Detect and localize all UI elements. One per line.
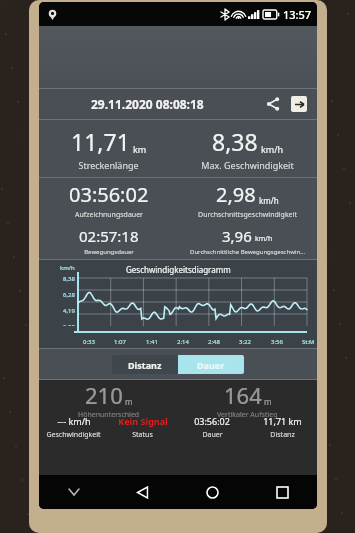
button[interactable]: Teilen — [261, 92, 285, 116]
staticText: Vertikaler Aufstieg — [217, 410, 278, 420]
staticText: m — [264, 396, 272, 407]
staticText: 02:57:18 — [79, 226, 139, 246]
staticText: 1:41 — [146, 338, 158, 346]
staticText: 11,71 — [71, 126, 130, 157]
staticText: Kein Signal — [118, 415, 168, 427]
staticText: 8,38 — [212, 126, 258, 157]
button[interactable]: Kein Signal — [108, 380, 177, 475]
staticText: km/h — [259, 195, 279, 206]
staticText: km/h — [261, 143, 284, 155]
button[interactable]: 3,96 — [178, 223, 317, 259]
button[interactable]: 11,71 — [39, 120, 178, 177]
staticText: Distanz — [128, 359, 162, 371]
button[interactable]: 03:56:02 — [177, 380, 247, 475]
button[interactable]: --- km/h — [39, 380, 108, 475]
staticText: Dauer — [202, 430, 223, 440]
staticText: Streckenlänge — [78, 159, 139, 171]
staticText: 03:56:02 — [69, 181, 149, 208]
staticText: Geschwindigkeitsdiagramm — [126, 264, 231, 275]
staticText: Durchschnittsgeschwindigkeit — [198, 210, 297, 220]
button[interactable]: Ausblenden — [39, 475, 108, 509]
staticText: Aufzeichnungsdauer — [75, 210, 143, 220]
staticText: 0:33 — [83, 338, 95, 346]
staticText: Durchschnittliche Bewegungsgeschwin... — [190, 248, 305, 256]
staticText: Dauer — [197, 359, 225, 371]
staticText: km/h — [255, 234, 273, 244]
button[interactable]: 02:57:18 — [39, 223, 178, 259]
button[interactable]: 03:56:02 — [39, 178, 178, 223]
button[interactable]: Übersicht — [247, 475, 317, 509]
staticText: 3,96 — [222, 226, 252, 246]
staticText: Geschwindigkeit — [46, 430, 101, 440]
staticText: 4,19 — [63, 307, 75, 315]
staticText: km/h — [60, 264, 75, 272]
staticText: 03:56:02 — [194, 415, 230, 427]
staticText: m — [125, 396, 133, 407]
staticText: 1:07 — [114, 338, 126, 346]
staticText: Bewegungsdauer — [84, 248, 134, 256]
button[interactable]: Startbildschirm — [177, 475, 247, 509]
button[interactable]: Dauer — [178, 355, 244, 374]
staticText: --- km/h — [57, 415, 91, 427]
staticText: Status — [132, 430, 153, 440]
staticText: 2,09 — [63, 323, 75, 326]
button[interactable]: 2,98 — [178, 178, 317, 223]
button[interactable]: 8,38 — [178, 120, 317, 177]
staticText: 2,98 — [216, 181, 256, 208]
staticText: St:M — [302, 338, 315, 346]
staticText: Distanz — [270, 430, 295, 440]
staticText: 8,38 — [63, 275, 75, 283]
staticText: 2:14 — [177, 338, 189, 346]
staticText: 29.11.2020 08:08:18 — [91, 96, 204, 112]
staticText: 2:48 — [208, 338, 220, 346]
staticText: 6,28 — [63, 291, 75, 299]
staticText: 11,71 km — [263, 415, 302, 427]
staticText: km — [133, 143, 147, 155]
button[interactable]: Zurück — [108, 475, 177, 509]
staticText: Max. Geschwindigkeit — [201, 159, 294, 171]
button[interactable]: 11,71 km — [247, 380, 317, 475]
staticText: 164 — [224, 380, 262, 410]
staticText: 3:22 — [239, 338, 251, 346]
button[interactable]: Exportieren — [291, 96, 307, 112]
staticText: Höhenunterschied — [78, 410, 140, 420]
staticText: 3:56 — [271, 338, 283, 346]
staticText: 210 — [85, 380, 123, 410]
button[interactable]: Distanz — [112, 355, 178, 374]
staticText: 13:57 — [283, 7, 312, 22]
